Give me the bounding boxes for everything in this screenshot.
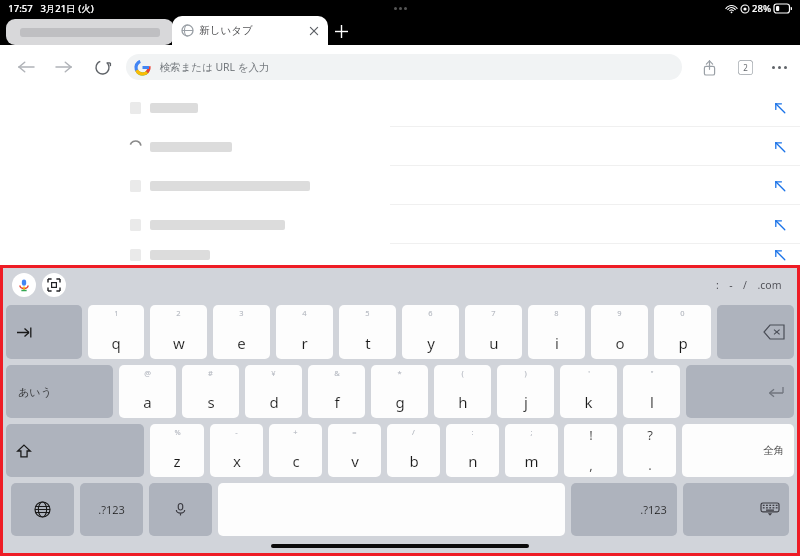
button[interactable]: Fill suggestion <box>0 88 800 127</box>
staticText: s <box>207 392 215 412</box>
button[interactable]: Share <box>694 52 724 82</box>
button[interactable]: 3 <box>213 305 270 359</box>
button[interactable]: Fill suggestion <box>0 166 800 205</box>
button[interactable]: 2 <box>150 305 207 359</box>
other: Switch language <box>35 502 50 517</box>
button[interactable]: 1 <box>88 305 144 359</box>
button[interactable]: Return <box>686 365 794 418</box>
staticText: 7 <box>491 308 496 318</box>
button[interactable]: .?123 <box>80 483 143 536</box>
staticText: l <box>650 392 654 412</box>
button[interactable]: あいう <box>6 365 113 418</box>
button[interactable]: Dictate <box>149 483 212 536</box>
button[interactable]: .com <box>757 278 782 292</box>
staticText: ( <box>461 368 464 378</box>
button[interactable]: Scan <box>42 273 66 297</box>
button[interactable]: : <box>716 278 719 292</box>
staticText: 検索または URL を入力 <box>159 60 270 74</box>
staticText: p <box>678 333 688 353</box>
staticText: d <box>269 392 279 412</box>
other: Fill suggestion <box>774 141 786 153</box>
staticText: 3月21日 (火) <box>40 2 94 15</box>
button[interactable]: # <box>182 365 239 418</box>
button[interactable]: / <box>387 424 440 477</box>
staticText: 17:57 <box>8 2 33 15</box>
staticText: 9 <box>617 308 622 318</box>
staticText: n <box>468 451 478 471</box>
button[interactable]: 9 <box>591 305 648 359</box>
button[interactable]: = <box>328 424 381 477</box>
staticText: h <box>458 392 468 412</box>
staticText: 2 <box>743 62 748 73</box>
staticText: .?123 <box>640 502 667 517</box>
button[interactable]: ' <box>560 365 617 418</box>
staticText: あいう <box>18 385 52 399</box>
button[interactable]: Close tab <box>308 25 320 37</box>
staticText: # <box>208 368 213 378</box>
staticText: : <box>471 427 474 437</box>
button[interactable]: Tabs <box>730 52 760 82</box>
button[interactable]: 7 <box>465 305 522 359</box>
button[interactable]: 8 <box>528 305 585 359</box>
button[interactable]: 5 <box>339 305 396 359</box>
button[interactable]: - <box>729 278 733 292</box>
staticText: ; <box>530 427 533 437</box>
button[interactable]: / <box>743 278 747 292</box>
staticText: ) <box>524 368 527 378</box>
staticText: & <box>334 368 340 378</box>
button[interactable]: More options <box>764 52 794 82</box>
button[interactable]: Fill suggestion <box>0 127 800 166</box>
staticText: o <box>615 333 625 353</box>
staticText: 0 <box>680 308 685 318</box>
button[interactable]: ( <box>434 365 491 418</box>
staticText: 4 <box>302 308 307 318</box>
staticText: @ <box>144 368 151 378</box>
button[interactable]: 全角 <box>682 424 794 477</box>
other: Backspace <box>764 325 784 339</box>
button[interactable]: ¥ <box>245 365 302 418</box>
button[interactable]: " <box>623 365 680 418</box>
button[interactable]: 新しいタブ <box>172 16 328 45</box>
button[interactable]: Shift <box>6 424 144 477</box>
staticText: " <box>650 368 654 378</box>
button[interactable]: 検索または URL を入力 <box>126 54 682 80</box>
button[interactable]: 6 <box>402 305 459 359</box>
staticText: ¥ <box>271 368 276 378</box>
button[interactable]: Voice input <box>12 273 36 297</box>
button[interactable]: 4 <box>276 305 333 359</box>
button[interactable]: Fill suggestion <box>0 244 800 265</box>
button[interactable]: Back <box>12 53 40 81</box>
button[interactable]: + <box>269 424 322 477</box>
button[interactable]: Forward <box>50 53 78 81</box>
button[interactable]: * <box>371 365 428 418</box>
button[interactable]: Fill suggestion <box>0 205 800 244</box>
button[interactable]: % <box>150 424 204 477</box>
button[interactable]: .?123 <box>571 483 677 536</box>
other: Tab <box>17 325 32 340</box>
button[interactable]: ! <box>564 424 617 477</box>
button[interactable]: & <box>308 365 365 418</box>
staticText: / <box>412 427 415 437</box>
button[interactable]: New tab <box>330 20 352 42</box>
button[interactable]: Reload <box>88 53 116 81</box>
button[interactable]: Hide keyboard <box>683 483 789 536</box>
button[interactable]: 0 <box>654 305 711 359</box>
button[interactable] <box>6 19 174 45</box>
staticText: w <box>173 333 185 353</box>
button[interactable]: - <box>210 424 263 477</box>
staticText: 28% <box>752 2 771 15</box>
staticText: - <box>235 427 238 437</box>
button[interactable]: ; <box>505 424 558 477</box>
button[interactable]: : <box>446 424 499 477</box>
button[interactable]: @ <box>119 365 176 418</box>
button[interactable]: ) <box>497 365 554 418</box>
staticText: b <box>409 451 419 471</box>
button[interactable]: Switch language <box>11 483 74 536</box>
staticText: j <box>524 392 528 412</box>
button[interactable]: Backspace <box>717 305 794 359</box>
button[interactable]: ? <box>623 424 676 477</box>
staticText: . <box>648 456 652 474</box>
button[interactable]: Tab <box>6 305 82 359</box>
other: Fill suggestion <box>774 249 786 261</box>
